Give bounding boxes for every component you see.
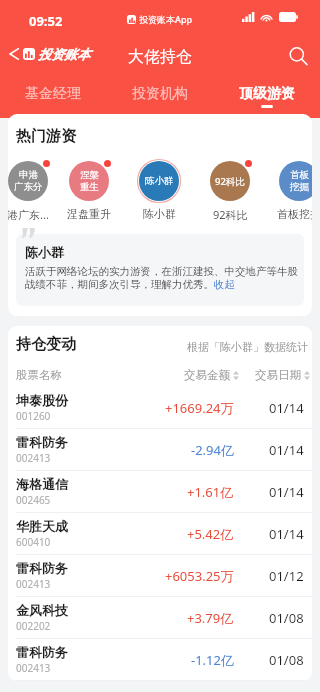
button[interactable]: 交易金额 <box>149 368 239 382</box>
staticText: 持仓变动 <box>16 335 76 354</box>
staticText: 坤泰股份 <box>16 392 68 408</box>
button[interactable]: 雷科防务 <box>8 429 312 471</box>
staticText: 92科比 <box>213 207 248 222</box>
staticText: 华胜天成 <box>16 518 68 534</box>
other: Back <box>7 47 21 61</box>
staticText: 002413 <box>16 661 51 675</box>
staticText: 投资账本 <box>38 46 90 62</box>
staticText: 挖掘 <box>290 181 309 193</box>
staticText: 活跃于网络论坛的实力游资，在浙江建投、中交地产等牛股 <box>25 265 298 278</box>
staticText: 申港 <box>19 169 38 181</box>
staticText: 陈小群 <box>145 175 174 187</box>
staticText: 股票名称 <box>16 368 149 382</box>
staticText: -1.12亿 <box>191 651 234 669</box>
button[interactable]: 顶级游资 <box>213 85 320 117</box>
staticText: 涅槃 <box>80 169 99 181</box>
button[interactable]: Back <box>7 46 90 62</box>
staticText: 战绩不菲，期间多次引导，理解力优秀。 <box>25 278 214 291</box>
staticText: 首板 <box>290 169 309 181</box>
staticText: +5.42亿 <box>187 525 234 543</box>
button[interactable]: 雷科防务 <box>8 639 312 681</box>
staticText: 基金经理 <box>25 85 81 103</box>
button[interactable]: 华胜天成 <box>8 513 312 555</box>
button[interactable]: 92科比 <box>200 158 260 222</box>
staticText: 01/14 <box>269 441 304 459</box>
staticText: 涅盘重升 <box>67 207 111 221</box>
staticText: 根据「陈小群」数据统计 <box>187 340 308 354</box>
staticText: 首板挖掘 <box>277 207 312 221</box>
button[interactable]: 海格通信 <box>8 471 312 513</box>
staticText: 92科比 <box>215 175 245 188</box>
staticText: 交易日期 <box>255 368 301 382</box>
staticText: 大佬持仓 <box>128 47 192 67</box>
staticText: 广东分 <box>14 181 43 193</box>
staticText: 09:52 <box>29 12 63 30</box>
staticText: 雷科防务 <box>16 434 68 450</box>
staticText: 陈小群 <box>25 244 64 260</box>
staticText: 热门游资 <box>16 127 76 146</box>
staticText: 01/08 <box>269 651 304 669</box>
staticText: 雷科防务 <box>16 644 68 660</box>
staticText: +1.61亿 <box>187 483 234 501</box>
staticText: 雷科防务 <box>16 560 68 576</box>
staticText: +3.79亿 <box>187 609 234 627</box>
staticText: 002202 <box>16 619 51 633</box>
staticText: 01/14 <box>269 525 304 543</box>
button[interactable]: 交易日期 <box>239 368 310 382</box>
staticText: 陈小群 <box>143 207 176 221</box>
staticText: +1669.24万 <box>165 399 234 417</box>
button[interactable]: 申港 <box>8 158 58 222</box>
staticText: 交易金额 <box>184 368 230 382</box>
staticText: 001260 <box>16 409 51 423</box>
button[interactable]: 首板 <box>269 158 312 221</box>
staticText: 收起 <box>214 278 235 291</box>
staticText: 002465 <box>16 493 51 507</box>
button[interactable]: 基金经理 <box>0 85 106 117</box>
staticText: 002413 <box>16 577 51 591</box>
staticText: 01/14 <box>269 483 304 501</box>
staticText: 01/08 <box>269 609 304 627</box>
staticText: 海格通信 <box>16 476 68 492</box>
staticText: 港广东... <box>8 207 49 222</box>
staticText: 金风科技 <box>16 602 68 618</box>
staticText: 600410 <box>16 535 51 549</box>
staticText: +6053.25万 <box>165 567 234 585</box>
button[interactable]: 收起 <box>214 278 235 291</box>
button[interactable]: 涅槃 <box>59 158 119 221</box>
button[interactable]: 投资机构 <box>106 85 213 117</box>
staticText: 投资机构 <box>132 85 188 103</box>
button[interactable]: 陈小群 <box>129 158 189 221</box>
staticText: 重生 <box>80 181 99 193</box>
button[interactable]: 坤泰股份 <box>8 387 312 429</box>
staticText: 投资账本App <box>139 13 193 25</box>
staticText: 01/12 <box>269 567 304 585</box>
staticText: 01/14 <box>269 399 304 417</box>
staticText: 002413 <box>16 451 51 465</box>
button[interactable]: 雷科防务 <box>8 555 312 597</box>
button[interactable]: Search <box>282 40 314 72</box>
staticText: -2.94亿 <box>191 441 234 459</box>
staticText: 顶级游资 <box>239 85 295 103</box>
button[interactable]: 金风科技 <box>8 597 312 639</box>
